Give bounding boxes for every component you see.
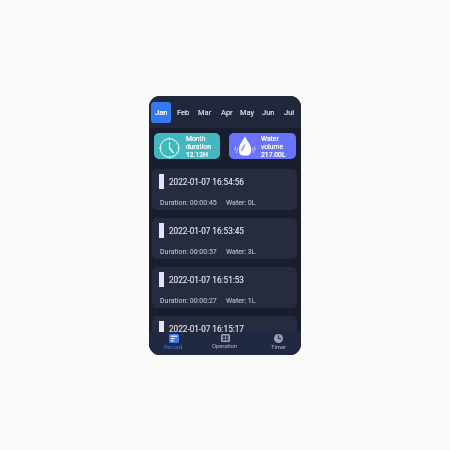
button[interactable]: Water	[229, 133, 296, 159]
staticText: 2022-01-07 16:51:53	[169, 275, 244, 285]
button[interactable]: 2022-01-07 16:15:17	[152, 316, 297, 355]
staticText: Apr	[221, 108, 233, 117]
staticText: Record	[164, 344, 183, 351]
staticText: Duration: 00:00:27	[160, 297, 217, 305]
other: Operation	[221, 334, 230, 342]
other: Record	[169, 334, 179, 343]
button[interactable]: 2022-01-07 16:51:53	[152, 267, 297, 308]
staticText: Water: 3L	[226, 248, 256, 256]
button[interactable]: Timer	[253, 332, 301, 355]
button[interactable]: Record	[149, 332, 198, 355]
staticText: Water	[261, 135, 279, 143]
other: Timer	[274, 334, 283, 343]
staticText: Operation	[212, 343, 238, 350]
staticText: 2022-01-07 16:54:56	[169, 177, 244, 187]
button[interactable]: Mar	[195, 102, 215, 123]
staticText: Feb	[177, 108, 190, 117]
staticText: Duration: 00:00:31	[160, 346, 217, 354]
button[interactable]: Feb	[173, 102, 193, 123]
staticText: Duration: 00:00:57	[160, 248, 217, 256]
button[interactable]: 2022-01-07 16:54:56	[152, 169, 297, 210]
staticText: 2022-01-07 16:15:17	[169, 324, 244, 334]
button[interactable]: Jul	[280, 102, 299, 123]
staticText: Month	[186, 135, 206, 143]
staticText: duration	[186, 143, 211, 151]
staticText: 2022-01-07 16:53:45	[169, 226, 244, 236]
button[interactable]: 2022-01-07 16:53:45	[152, 218, 297, 259]
staticText: Duration: 00:00:45	[160, 199, 217, 207]
button[interactable]: Month	[154, 133, 220, 159]
button[interactable]: Apr	[217, 102, 236, 123]
button[interactable]: Jun	[259, 102, 278, 123]
staticText: May	[240, 108, 255, 117]
staticText: Mar	[198, 108, 212, 117]
staticText: Timer	[271, 344, 286, 351]
staticText: Water: 2L	[226, 346, 256, 354]
staticText: Water: 1L	[226, 297, 256, 305]
staticText: Jun	[262, 108, 275, 117]
staticText: 12.12H	[186, 151, 208, 159]
staticText: 217.00L	[261, 151, 286, 159]
staticText: Water: 0L	[226, 199, 256, 207]
button[interactable]: Operation	[200, 332, 250, 355]
button[interactable]: Jan	[151, 102, 171, 123]
staticText: Jul	[284, 108, 295, 117]
staticText: volume	[261, 143, 284, 151]
staticText: Jan	[155, 108, 168, 117]
button[interactable]: May	[238, 102, 257, 123]
